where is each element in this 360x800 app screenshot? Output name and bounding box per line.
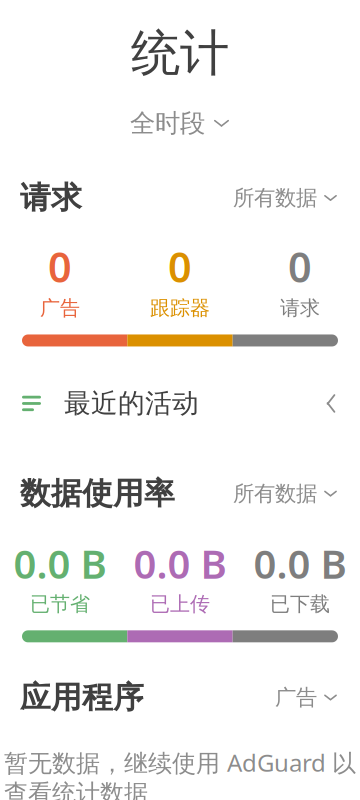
staticText: 应用程序 [20,679,144,716]
button[interactable]: 所有数据 [231,474,340,513]
staticText: 已节省 [30,592,90,616]
staticText: 所有数据 [233,480,317,507]
staticText: 0.0 B [13,537,106,590]
staticText: 最近的活动 [64,387,199,420]
staticText: 统计 [131,23,229,84]
staticText: 0 [168,239,192,294]
staticText: 广告 [275,684,317,711]
staticText: 暂无数据，继续使用 AdGuard 以查看统计数据 [4,747,356,800]
staticText: 所有数据 [233,185,317,211]
staticText: 全时段 [130,108,205,139]
staticText: 0.0 B [133,537,226,590]
staticText: 0.0 B [253,537,346,590]
button[interactable]: 全时段 [120,100,240,147]
staticText: 广告 [40,296,80,320]
staticText: 数据使用率 [20,475,175,512]
staticText: 0 [288,239,312,294]
button[interactable]: 广告 [273,678,340,717]
staticText: 请求 [20,179,82,217]
staticText: 请求 [280,296,320,320]
button[interactable]: 所有数据 [231,179,340,217]
staticText: 跟踪器 [150,296,210,320]
button[interactable]: 最近的活动 [0,366,360,440]
staticText: 已下载 [270,592,330,616]
staticText: 0 [48,239,72,294]
staticText: 已上传 [150,592,210,616]
